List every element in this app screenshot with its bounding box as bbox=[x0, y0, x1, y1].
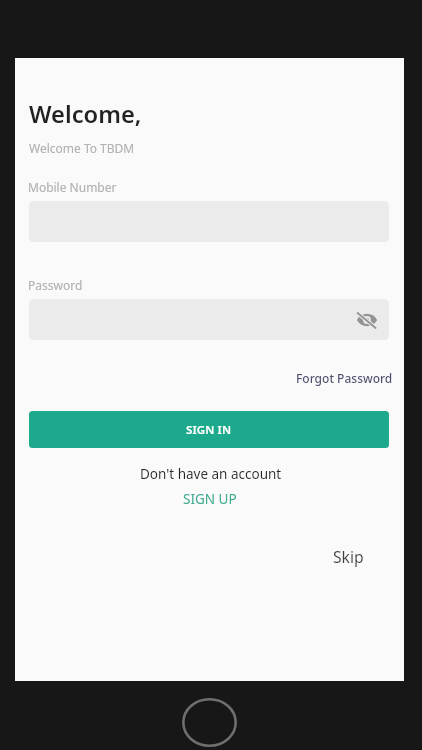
button[interactable]: Home bbox=[182, 698, 237, 747]
button[interactable]: Show password bbox=[350, 303, 384, 337]
staticText: Skip bbox=[333, 546, 364, 567]
staticText: SIGN IN bbox=[186, 422, 232, 438]
button[interactable]: Skip bbox=[331, 544, 366, 569]
staticText: Welcome, bbox=[29, 98, 142, 130]
staticText: SIGN UP bbox=[183, 490, 237, 508]
staticText: Don't have an account bbox=[140, 465, 282, 483]
staticText: Mobile Number bbox=[28, 179, 117, 195]
button[interactable]: SIGN IN bbox=[29, 411, 389, 448]
staticText: Password bbox=[28, 277, 83, 293]
staticText: Forgot Password bbox=[296, 370, 393, 386]
staticText: Welcome To TBDM bbox=[29, 140, 135, 156]
button[interactable]: Forgot Password bbox=[294, 368, 395, 388]
button[interactable]: Password input bbox=[29, 299, 389, 340]
button[interactable]: SIGN UP bbox=[181, 488, 239, 510]
